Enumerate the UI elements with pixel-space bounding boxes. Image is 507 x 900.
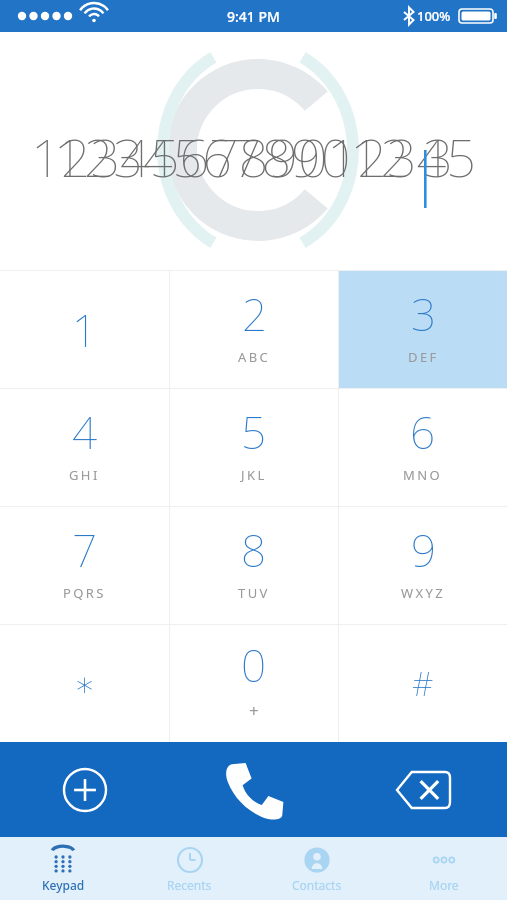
staticText: 100% bbox=[417, 7, 451, 25]
staticText: 9:41 PM bbox=[227, 7, 280, 26]
staticText: 3 bbox=[411, 284, 437, 344]
staticText: 1 bbox=[72, 300, 98, 360]
staticText: 2 bbox=[242, 284, 268, 344]
staticText: 9 bbox=[411, 520, 437, 580]
button[interactable]: 6 bbox=[339, 389, 507, 506]
button[interactable]: 0 bbox=[170, 625, 338, 742]
staticText: TUV bbox=[238, 584, 270, 602]
staticText: More bbox=[429, 877, 459, 893]
button[interactable]: Keypad bbox=[0, 837, 126, 900]
button[interactable]: 5 bbox=[170, 389, 338, 506]
staticText: WXYZ bbox=[401, 584, 446, 602]
button[interactable]: 9 bbox=[339, 507, 507, 624]
staticText: Contacts bbox=[292, 877, 342, 893]
staticText: 7 bbox=[72, 520, 98, 580]
button[interactable]: ∗ bbox=[0, 625, 169, 742]
staticText: 123456789012 3 bbox=[54, 121, 453, 192]
staticText: 6 bbox=[410, 402, 436, 462]
staticText: 8 bbox=[241, 520, 267, 580]
button[interactable]: 4 bbox=[0, 389, 169, 506]
staticText: 4 bbox=[72, 402, 98, 462]
button[interactable]: Call bbox=[169, 742, 338, 837]
button[interactable]: 3 bbox=[339, 271, 507, 388]
button[interactable]: 2 bbox=[170, 271, 338, 388]
staticText: + bbox=[249, 699, 259, 722]
staticText: Recents bbox=[167, 877, 212, 893]
staticText: MNO bbox=[403, 466, 443, 484]
staticText: JKL bbox=[241, 466, 267, 484]
staticText: 5 bbox=[241, 402, 267, 462]
button[interactable]: Contacts bbox=[253, 837, 380, 900]
button[interactable]: # bbox=[339, 625, 507, 742]
staticText: DEF bbox=[408, 348, 439, 366]
staticText: Keypad bbox=[42, 877, 85, 893]
staticText: 123456789012345 bbox=[0, 121, 507, 192]
button[interactable]: 7 bbox=[0, 507, 169, 624]
button[interactable]: 1 bbox=[0, 271, 169, 388]
staticText: PQRS bbox=[63, 584, 106, 602]
button[interactable]: Add contact bbox=[0, 742, 169, 837]
staticText: 0 bbox=[241, 635, 267, 695]
staticText: ABC bbox=[238, 348, 271, 366]
button[interactable]: Recents bbox=[126, 837, 253, 900]
staticText: ∗ bbox=[74, 664, 96, 704]
staticText: GHI bbox=[69, 466, 100, 484]
button[interactable]: Backspace bbox=[338, 742, 507, 837]
button[interactable]: More bbox=[380, 837, 507, 900]
staticText: # bbox=[412, 661, 434, 706]
button[interactable]: 8 bbox=[170, 507, 338, 624]
